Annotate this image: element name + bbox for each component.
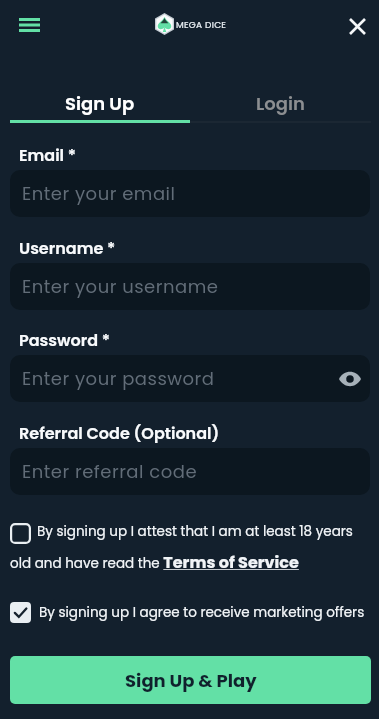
button[interactable]: Enter your email	[10, 170, 370, 217]
button[interactable]: Login	[190, 78, 370, 121]
staticText: Email *	[19, 144, 77, 166]
button[interactable]: Show password	[337, 366, 363, 392]
button[interactable]: Close	[339, 8, 375, 44]
staticText: By signing up I attest that I am at leas…	[10, 522, 369, 574]
staticText: Enter your password	[22, 366, 215, 391]
button[interactable]: Enter your password	[10, 355, 370, 402]
staticText: Password *	[19, 329, 111, 351]
button[interactable]: Enter referral code	[10, 448, 370, 495]
button[interactable]: By signing up I agree to receive marketi…	[10, 602, 365, 623]
button[interactable]: By signing up I attest that I am at leas…	[10, 522, 369, 584]
staticText: Enter referral code	[22, 459, 198, 484]
staticText: Referral Code (Optional)	[19, 422, 220, 444]
staticText: Login	[256, 91, 305, 116]
staticText: Enter your email	[22, 181, 176, 206]
staticText: MEGA DICE	[176, 19, 227, 32]
button[interactable]: Sign Up	[10, 78, 190, 121]
staticText: Sign Up	[65, 91, 135, 116]
staticText: Sign Up & Play	[125, 668, 257, 693]
button[interactable]: Enter your username	[10, 263, 370, 310]
button[interactable]: Menu	[11, 7, 47, 43]
staticText: By signing up I agree to receive marketi…	[39, 603, 365, 622]
staticText: Username *	[19, 237, 116, 259]
staticText: Enter your username	[22, 274, 219, 299]
button[interactable]: Sign Up & Play	[10, 656, 371, 704]
